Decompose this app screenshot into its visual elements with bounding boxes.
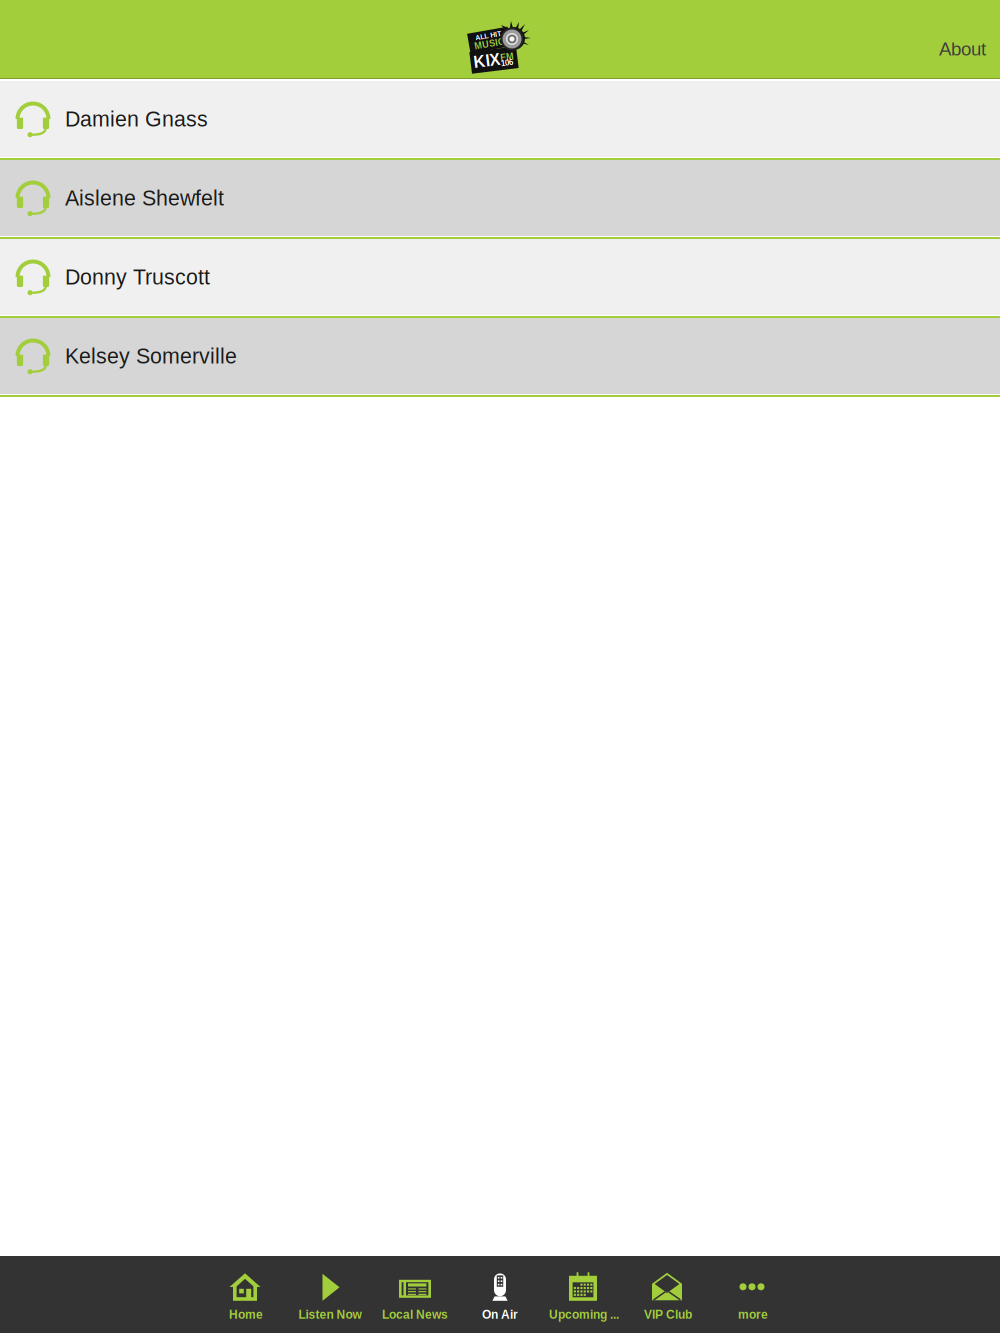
button[interactable]: About bbox=[890, 24, 986, 74]
staticText: Donny Truscott bbox=[65, 265, 210, 289]
button[interactable]: VIP Club bbox=[626, 1264, 710, 1328]
staticText: VIP Club bbox=[644, 1308, 692, 1321]
staticText: Local News bbox=[382, 1308, 448, 1321]
button[interactable]: Local News bbox=[373, 1264, 457, 1328]
staticText: more bbox=[738, 1308, 768, 1321]
button[interactable]: Damien Gnass bbox=[0, 81, 1000, 160]
staticText: On Air bbox=[482, 1308, 518, 1321]
staticText: ALL HIT bbox=[476, 32, 502, 39]
staticText: Listen Now bbox=[298, 1308, 361, 1321]
button[interactable]: Upcoming ... bbox=[542, 1264, 626, 1328]
staticText: Aislene Shewfelt bbox=[65, 186, 224, 210]
staticText: Upcoming ... bbox=[549, 1308, 619, 1321]
button[interactable]: On Air bbox=[458, 1264, 542, 1328]
staticText: MUSIC bbox=[473, 38, 504, 49]
button[interactable]: Kelsey Somerville bbox=[0, 318, 1000, 397]
staticText: 106 bbox=[500, 60, 512, 69]
staticText: FM bbox=[500, 53, 514, 64]
button[interactable]: Listen Now bbox=[288, 1264, 372, 1328]
staticText: About bbox=[939, 39, 986, 59]
button[interactable]: Donny Truscott bbox=[0, 239, 1000, 318]
button[interactable]: Aislene Shewfelt bbox=[0, 160, 1000, 239]
button[interactable]: more bbox=[711, 1264, 795, 1328]
staticText: Kelsey Somerville bbox=[65, 344, 237, 368]
staticText: Damien Gnass bbox=[65, 107, 208, 131]
button[interactable]: Home bbox=[204, 1264, 288, 1328]
staticText: KIX bbox=[473, 51, 500, 69]
staticText: Home bbox=[229, 1308, 263, 1321]
